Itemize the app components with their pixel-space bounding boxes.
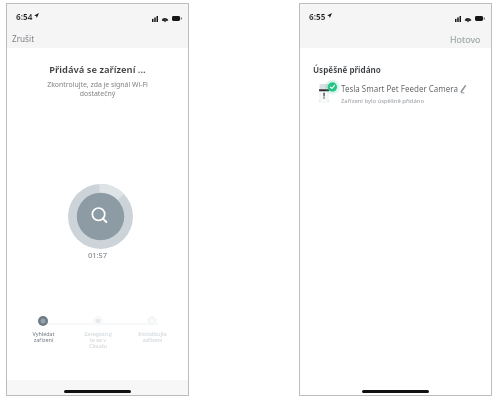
button[interactable]: Inicializujte zařízení [129, 316, 175, 344]
button[interactable]: Zrušit [12, 33, 35, 44]
button[interactable]: Tesla Smart Pet Feeder Camera [299, 80, 492, 110]
staticText: Zkontrolujte, zda je signál Wi-Fi dostat… [6, 80, 189, 98]
staticText: Zaregistruj te se v Cloudu [84, 330, 112, 350]
staticText: Úspěšně přidáno [313, 64, 381, 75]
button[interactable]: Zaregistruj te se v Cloudu [75, 316, 121, 350]
staticText: Zrušit [12, 33, 35, 44]
staticText: Tesla Smart Pet Feeder Camera [341, 83, 458, 94]
button[interactable]: Vyhledat zařízení [20, 316, 66, 344]
staticText: Přidává se zařízení ... [6, 63, 189, 76]
staticText: 6:54 [16, 11, 33, 22]
staticText: Zařízení bylo úspěšně přidáno [341, 97, 424, 105]
button[interactable]: Rename device [455, 82, 471, 96]
button[interactable]: Hotovo [450, 33, 481, 45]
staticText: Vyhledat zařízení [32, 330, 55, 344]
staticText: Hotovo [450, 33, 481, 45]
staticText: Inicializujte zařízení [138, 330, 167, 344]
staticText: 6:55 [309, 11, 326, 22]
staticText: 01:57 [6, 250, 189, 260]
